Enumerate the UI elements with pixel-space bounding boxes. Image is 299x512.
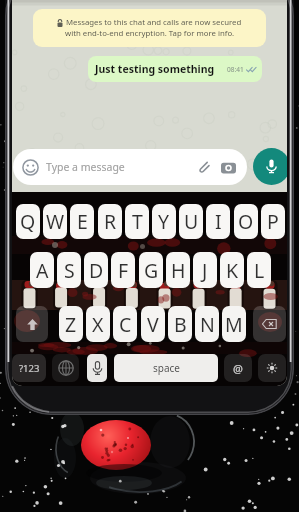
button[interactable]: U xyxy=(179,204,203,239)
button[interactable] xyxy=(52,354,79,382)
staticText: U xyxy=(184,208,199,235)
staticText: with end-to-end encryption. Tap for more… xyxy=(65,28,235,39)
staticText: H xyxy=(171,257,186,284)
button[interactable]: G xyxy=(139,252,163,288)
staticText: Messages to this chat and calls are now … xyxy=(66,17,242,28)
staticText: @ xyxy=(233,361,243,376)
staticText: W xyxy=(46,208,65,235)
button[interactable]: T xyxy=(125,204,149,239)
button[interactable] xyxy=(253,306,286,342)
staticText: ?123 xyxy=(19,362,40,375)
staticText: P xyxy=(267,208,279,235)
staticText: Y xyxy=(158,208,170,235)
button[interactable]: K xyxy=(220,252,244,288)
button[interactable]: V xyxy=(141,306,165,342)
button[interactable] xyxy=(87,354,107,382)
button[interactable]: R xyxy=(98,204,122,239)
button[interactable]: H xyxy=(166,252,190,288)
button[interactable]: F xyxy=(111,252,135,288)
staticText: M xyxy=(225,311,243,338)
button[interactable]: E xyxy=(70,204,94,239)
staticText: K xyxy=(226,257,239,284)
staticText: Z xyxy=(65,311,77,338)
staticText: E xyxy=(77,208,88,235)
staticText: N xyxy=(200,311,215,338)
button[interactable]: C xyxy=(113,306,137,342)
staticText: C xyxy=(119,311,132,338)
staticText: T xyxy=(132,208,143,235)
button[interactable]: Type a message xyxy=(13,149,247,185)
button[interactable]: Z xyxy=(59,306,83,342)
button[interactable] xyxy=(16,306,48,342)
button[interactable]: W xyxy=(43,204,67,239)
button[interactable]: M xyxy=(222,306,246,342)
staticText: space xyxy=(153,361,180,375)
button[interactable]: J xyxy=(193,252,217,288)
button[interactable]: N xyxy=(195,306,219,342)
button[interactable]: @ xyxy=(224,354,252,382)
staticText: V xyxy=(147,311,159,338)
button[interactable]: Messages to this chat and calls are now … xyxy=(33,9,266,47)
button[interactable]: S xyxy=(57,252,81,288)
staticText: O xyxy=(238,208,254,235)
button[interactable]: D xyxy=(84,252,108,288)
staticText: R xyxy=(104,208,117,235)
staticText: 08:41 xyxy=(227,65,244,74)
staticText: D xyxy=(89,257,104,284)
button[interactable]: I xyxy=(206,204,230,239)
staticText: L xyxy=(254,257,265,284)
button[interactable]: Just testing something xyxy=(88,56,262,82)
button[interactable]: ?123 xyxy=(12,354,46,382)
staticText: Q xyxy=(20,208,36,235)
button[interactable]: Y xyxy=(152,204,176,239)
staticText: G xyxy=(144,257,159,284)
staticText: J xyxy=(202,257,208,284)
button[interactable]: L xyxy=(247,252,271,288)
button[interactable]: P xyxy=(261,204,285,239)
staticText: Type a message xyxy=(46,160,125,174)
staticText: A xyxy=(36,257,49,284)
staticText: X xyxy=(92,311,104,338)
button[interactable] xyxy=(253,148,287,185)
button[interactable]: B xyxy=(168,306,192,342)
staticText: F xyxy=(118,257,129,284)
button[interactable]: A xyxy=(30,252,54,288)
button[interactable]: Q xyxy=(16,204,40,239)
button[interactable]: O xyxy=(234,204,258,239)
staticText: I xyxy=(215,208,222,235)
button[interactable]: X xyxy=(86,306,110,342)
staticText: B xyxy=(174,311,187,338)
staticText: S xyxy=(64,257,75,284)
button[interactable] xyxy=(258,354,286,382)
staticText: Just testing something xyxy=(95,62,215,76)
button[interactable]: space xyxy=(114,354,218,382)
